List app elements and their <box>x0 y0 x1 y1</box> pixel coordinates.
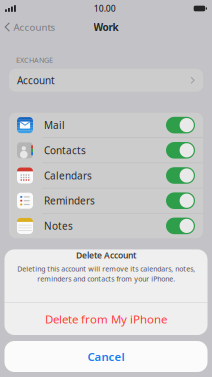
staticText: 10.00 <box>94 3 116 14</box>
button[interactable]: Accounts <box>0 17 56 37</box>
button[interactable]: Delete from My iPhone <box>4 303 207 335</box>
staticText: EXCHANGE <box>16 55 53 65</box>
staticText: Mail <box>44 118 65 132</box>
staticText: Reminders <box>44 194 95 207</box>
staticText: Work <box>93 20 118 34</box>
button[interactable]: Account <box>9 69 203 92</box>
button[interactable]: Mail <box>9 113 203 138</box>
staticText: Delete Account <box>76 249 136 261</box>
staticText: Contacts <box>44 143 86 157</box>
staticText: Notes <box>44 219 73 233</box>
button[interactable]: Cancel <box>4 341 207 372</box>
staticText: Accounts <box>14 20 56 34</box>
staticText: Account <box>17 73 55 87</box>
staticText: Calendars <box>44 169 92 182</box>
staticText: Cancel <box>87 349 124 364</box>
staticText: Delete from My iPhone <box>45 311 167 327</box>
button[interactable]: Reminders <box>9 188 203 214</box>
button[interactable]: Notes <box>9 214 203 238</box>
staticText: Deleting this account will remove its ca… <box>17 264 195 284</box>
button[interactable]: Contacts <box>9 138 203 163</box>
button[interactable]: Calendars <box>9 163 203 188</box>
